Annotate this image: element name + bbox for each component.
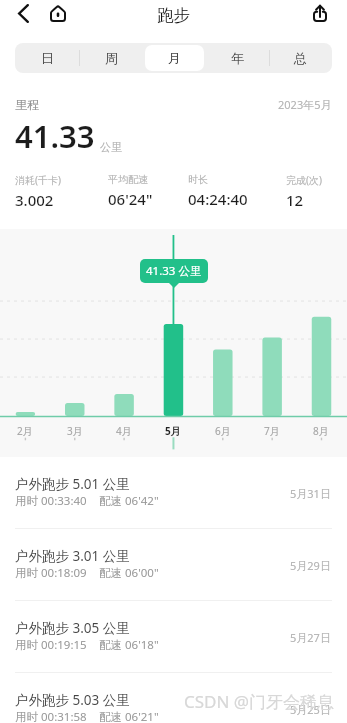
staticText: 配速 06'21": [99, 709, 159, 723]
staticText: 5月27日: [290, 630, 331, 645]
button[interactable]: 年: [206, 43, 269, 73]
staticText: 用时 00:33:40: [15, 493, 87, 509]
button[interactable]: 户外跑步 3.05 公里: [0, 601, 347, 672]
staticText: 3月: [67, 424, 83, 438]
staticText: 时长: [188, 173, 208, 186]
staticText: 年: [231, 50, 244, 66]
staticText: 4月: [116, 424, 132, 438]
staticText: 户外跑步 5.01 公里: [15, 475, 130, 493]
staticText: 06'24": [108, 189, 153, 209]
staticText: 完成(次): [286, 173, 322, 187]
staticText: 跑步: [157, 5, 190, 26]
staticText: 5月: [165, 424, 181, 438]
staticText: 户外跑步 3.01 公里: [15, 547, 130, 565]
staticText: 12: [286, 190, 304, 210]
staticText: 用时 00:31:58: [15, 709, 87, 723]
staticText: 2023年5月: [278, 97, 332, 112]
staticText: 总: [294, 50, 307, 66]
staticText: 8月: [313, 424, 329, 438]
button[interactable]: Back: [11, 2, 35, 25]
button[interactable]: 户外跑步 5.03 公里: [0, 673, 347, 723]
staticText: 2月: [17, 424, 33, 438]
staticText: 消耗(千卡): [15, 173, 61, 187]
button[interactable]: 总: [269, 43, 332, 73]
button[interactable]: Share: [308, 2, 332, 25]
staticText: 5月31日: [290, 486, 331, 501]
staticText: 周: [105, 50, 118, 66]
staticText: CSDN @门牙会稀息: [184, 690, 335, 713]
staticText: 41.33: [15, 115, 95, 157]
staticText: 41.33 公里: [146, 263, 202, 279]
staticText: 5月29日: [290, 558, 331, 573]
staticText: 用时 00:18:09: [15, 565, 87, 581]
staticText: 月: [168, 50, 181, 66]
button[interactable]: 周: [79, 43, 143, 73]
button[interactable]: 户外跑步 5.01 公里: [0, 457, 347, 528]
button[interactable]: 日: [15, 43, 79, 73]
staticText: 日: [41, 50, 54, 66]
staticText: 户外跑步 5.03 公里: [15, 691, 130, 709]
staticText: 04:24:40: [188, 189, 248, 209]
staticText: 里程: [15, 97, 39, 112]
staticText: 用时 00:19:15: [15, 637, 87, 653]
staticText: 公里: [100, 140, 122, 154]
staticText: 平均配速: [108, 173, 148, 186]
staticText: 7月: [264, 424, 280, 438]
button[interactable]: 月: [143, 43, 206, 73]
button[interactable]: Home: [46, 2, 70, 25]
staticText: 6月: [215, 424, 231, 438]
staticText: 配速 06'00": [99, 565, 159, 581]
staticText: 5月25日: [290, 702, 331, 717]
staticText: 3.002: [15, 190, 54, 210]
staticText: 配速 06'42": [99, 493, 159, 509]
staticText: 配速 06'18": [99, 637, 159, 653]
staticText: 户外跑步 3.05 公里: [15, 619, 130, 637]
button[interactable]: 户外跑步 3.01 公里: [0, 529, 347, 600]
